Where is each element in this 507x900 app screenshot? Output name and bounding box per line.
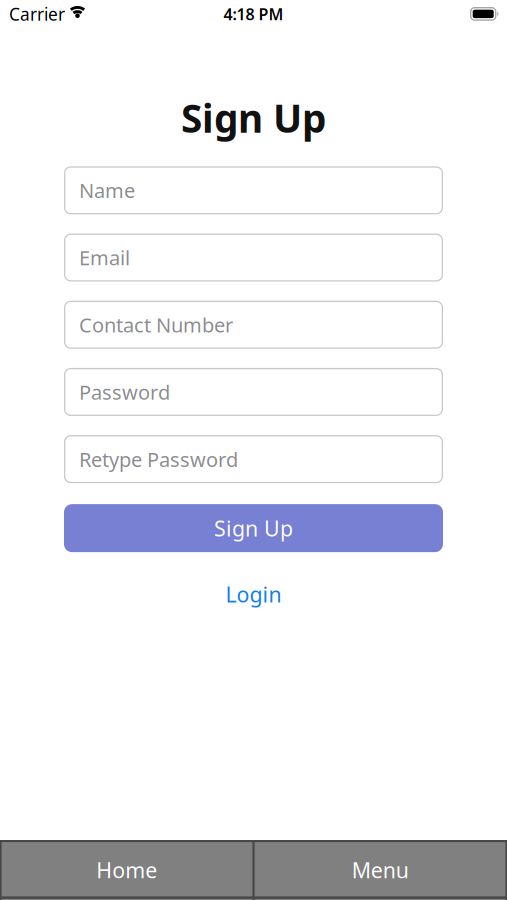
staticText: Sign Up bbox=[181, 92, 326, 143]
button[interactable]: Menu bbox=[253, 840, 507, 900]
button[interactable]: Name text field bbox=[64, 166, 443, 214]
staticText: Email bbox=[79, 244, 130, 271]
staticText: Sign Up bbox=[214, 514, 293, 542]
button[interactable]: Home bbox=[0, 840, 253, 900]
button[interactable]: Email text field bbox=[64, 233, 443, 281]
staticText: Retype Password bbox=[79, 446, 238, 472]
staticText: 4:18 PM bbox=[223, 3, 283, 25]
staticText: Carrier bbox=[9, 2, 65, 25]
button[interactable]: Retype Password text field bbox=[64, 435, 443, 483]
staticText: Home bbox=[96, 856, 157, 884]
staticText: Name bbox=[79, 177, 135, 204]
button[interactable]: Contact Number text field bbox=[64, 301, 443, 349]
button[interactable]: Sign Up bbox=[64, 504, 443, 552]
staticText: Login bbox=[225, 580, 281, 608]
button[interactable]: Login bbox=[225, 580, 281, 608]
staticText: Password bbox=[79, 379, 170, 405]
staticText: Contact Number bbox=[79, 311, 233, 338]
staticText: Menu bbox=[352, 856, 409, 884]
button[interactable]: Password text field bbox=[64, 368, 443, 416]
